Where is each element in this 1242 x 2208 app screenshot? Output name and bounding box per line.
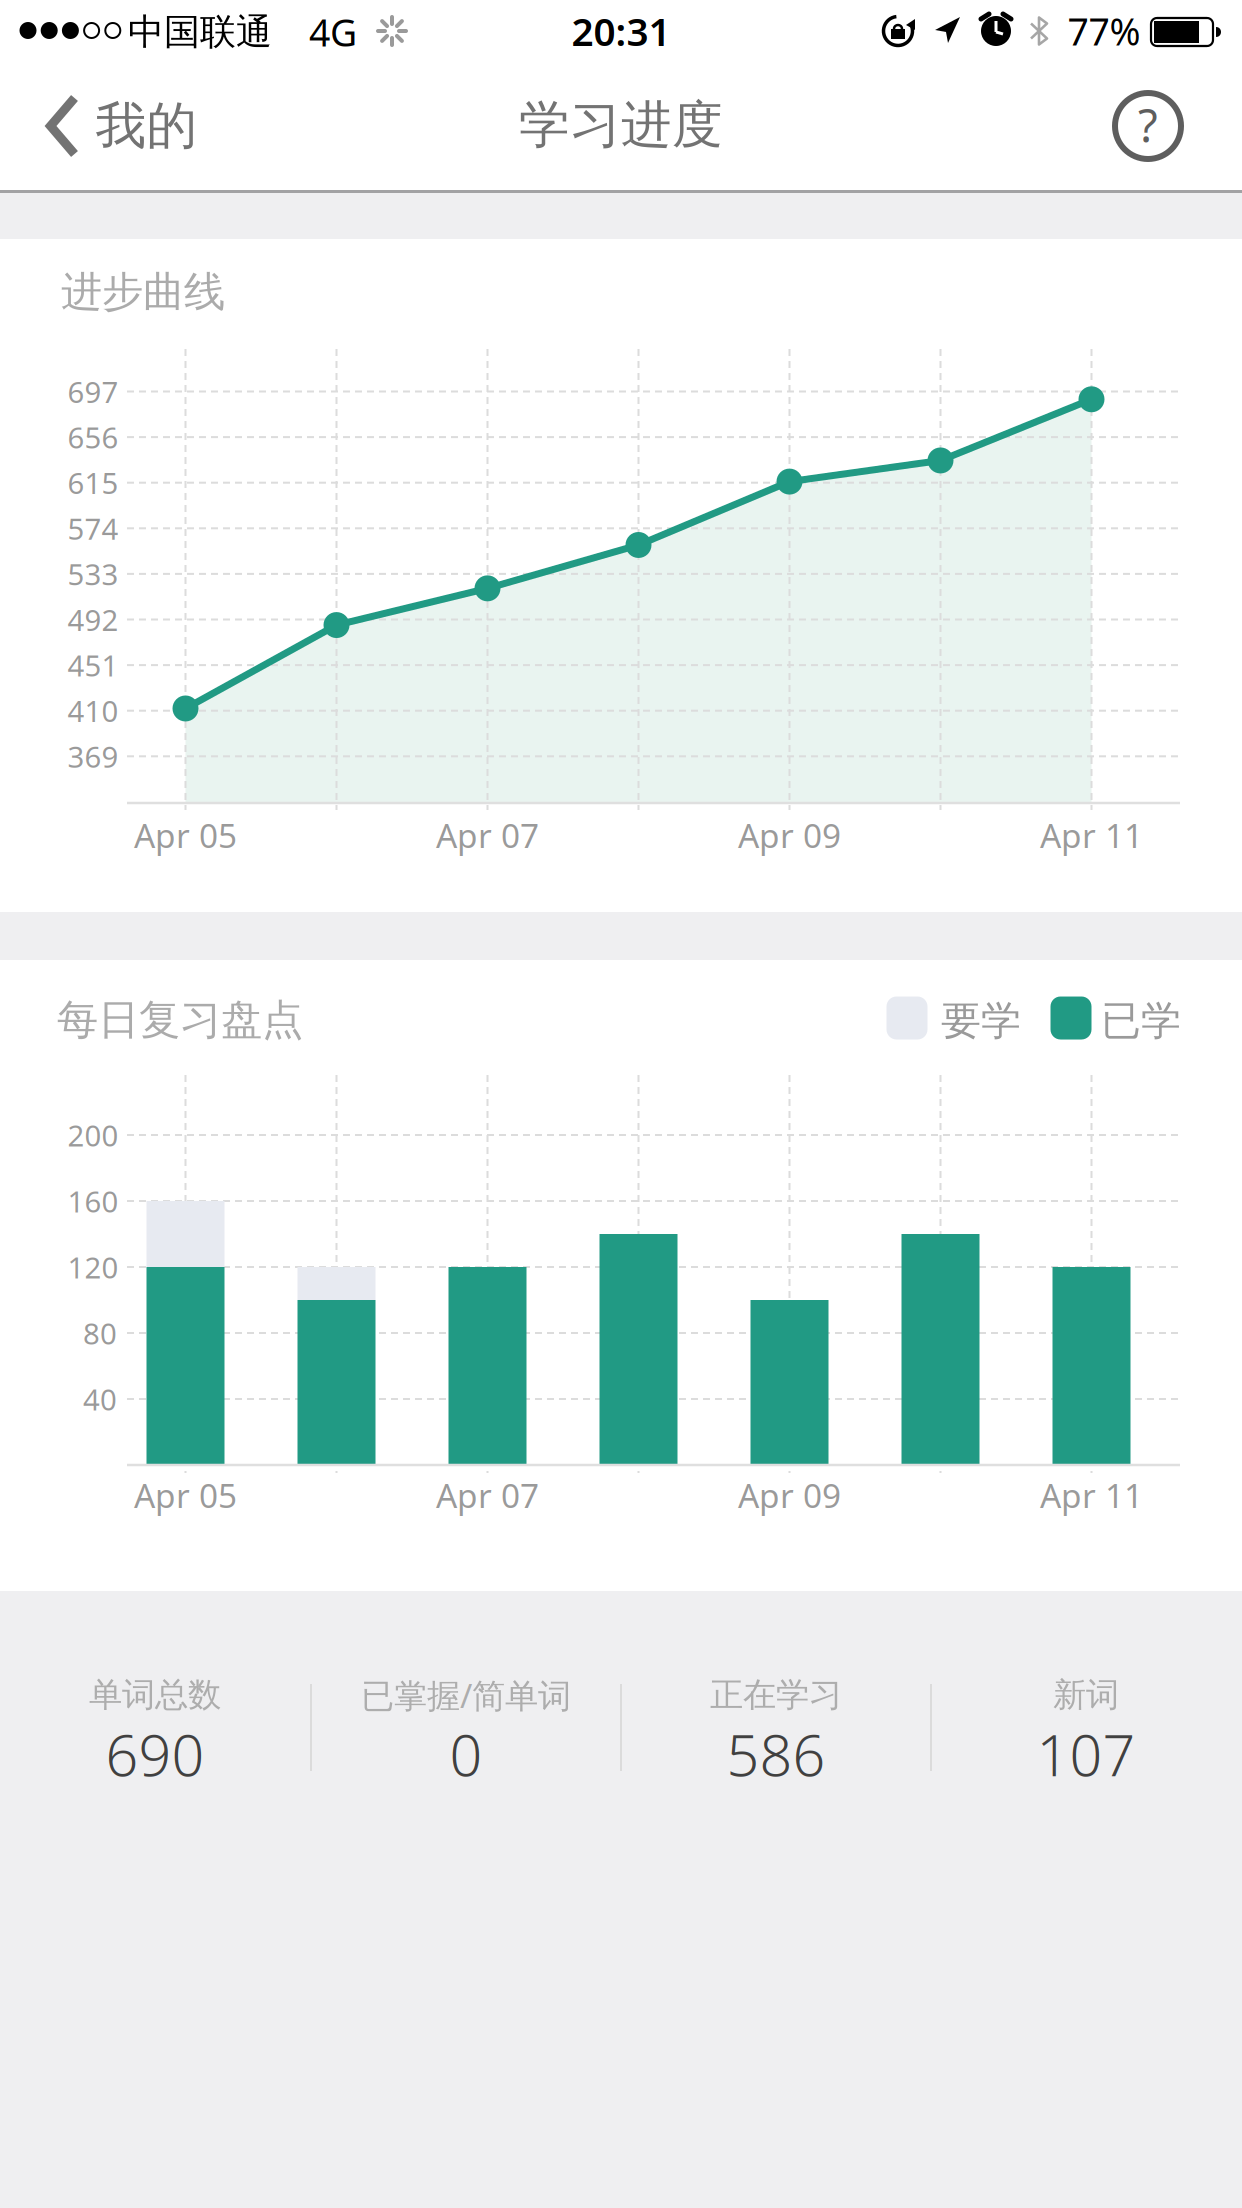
staticText: 进步曲线	[61, 267, 225, 317]
staticText: Apr 11	[1040, 813, 1143, 857]
staticText: 690	[105, 1716, 204, 1792]
staticText: 120	[67, 1247, 118, 1286]
staticText: 451	[67, 646, 118, 685]
staticText: 586	[726, 1716, 825, 1792]
staticText: 160	[67, 1181, 118, 1220]
staticText: 中国联通	[128, 10, 272, 54]
staticText: 656	[67, 418, 118, 457]
staticText: Apr 07	[436, 1473, 539, 1517]
staticText: Apr 09	[738, 1473, 841, 1517]
staticText: 要学	[941, 996, 1021, 1045]
staticText: Apr 09	[738, 813, 841, 857]
staticText: ?	[1138, 95, 1158, 155]
staticText: 已掌握/简单词	[361, 1673, 571, 1717]
staticText: 正在学习	[710, 1674, 842, 1715]
button[interactable]: Help	[1111, 89, 1185, 163]
staticText: Apr 05	[134, 1473, 237, 1517]
staticText: 697	[67, 372, 118, 411]
staticText: 574	[67, 509, 118, 548]
button[interactable]: 我的	[46, 64, 197, 188]
staticText: 每日复习盘点	[57, 995, 303, 1045]
staticText: 新词	[1053, 1674, 1119, 1715]
staticText: 80	[83, 1313, 117, 1352]
staticText: 40	[83, 1379, 117, 1418]
staticText: 533	[67, 554, 118, 593]
staticText: 20:31	[571, 5, 670, 57]
staticText: 0	[449, 1716, 482, 1792]
staticText: Apr 07	[436, 813, 539, 857]
staticText: 369	[67, 737, 118, 776]
staticText: 492	[67, 600, 118, 639]
staticText: 200	[67, 1115, 118, 1154]
staticText: 已学	[1101, 996, 1181, 1045]
staticText: Apr 05	[134, 813, 237, 857]
staticText: 我的	[95, 95, 197, 157]
staticText: 410	[67, 691, 118, 730]
staticText: 107	[1036, 1716, 1135, 1792]
staticText: 77%	[1067, 6, 1140, 56]
staticText: Apr 11	[1040, 1473, 1143, 1517]
staticText: 单词总数	[89, 1674, 221, 1715]
staticText: 4G	[309, 7, 357, 57]
staticText: 615	[67, 463, 118, 502]
staticText: 学习进度	[519, 94, 723, 156]
